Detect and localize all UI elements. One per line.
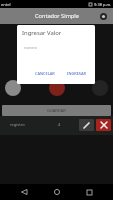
button[interactable]: Home	[49, 184, 65, 200]
button[interactable]: GUARDAR	[2, 105, 111, 116]
staticText: 9:38 p.m.	[93, 2, 112, 7]
staticText: INGRESAR	[67, 71, 86, 76]
button[interactable]: CANCELAR	[34, 70, 56, 77]
button[interactable]: Increase	[92, 80, 108, 96]
button[interactable]: Reset	[49, 80, 65, 96]
staticText: entel	[1, 2, 11, 7]
button[interactable]: Info	[99, 12, 108, 21]
staticText: 4	[58, 122, 61, 127]
button[interactable]: Recents	[81, 184, 97, 200]
button[interactable]: Delete	[96, 119, 111, 131]
button[interactable]: Back	[16, 184, 32, 200]
staticText: registro	[10, 122, 25, 127]
staticText: Ingresar Valor	[22, 29, 62, 37]
button[interactable]: Decrease	[5, 80, 21, 96]
staticText: Contador Simple	[35, 12, 79, 20]
button[interactable]: INGRESAR	[66, 70, 87, 77]
staticText: GUARDAR	[47, 108, 66, 113]
staticText: CANCELAR	[35, 71, 55, 76]
staticText: numero	[24, 45, 38, 50]
button[interactable]: Edit	[79, 119, 94, 131]
